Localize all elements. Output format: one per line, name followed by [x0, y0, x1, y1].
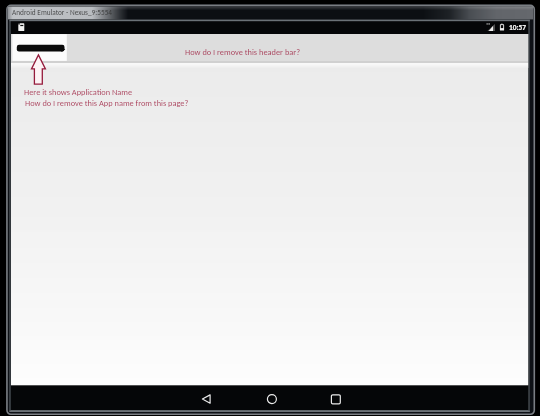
button[interactable]: Application name	[12, 34, 66, 61]
button[interactable]: Back	[200, 392, 214, 406]
staticText: Android Emulator - Nexus_9:5554	[12, 8, 113, 17]
staticText: How do I remove this header bar?	[185, 47, 301, 57]
button[interactable]: App bar	[11, 34, 528, 61]
staticText: How do I remove this App name from this …	[25, 98, 189, 108]
button[interactable]: Home	[265, 392, 279, 406]
button[interactable]: Recent apps	[329, 392, 343, 406]
staticText: 10:57	[509, 23, 527, 32]
staticText: Here it shows Application Name	[24, 87, 133, 97]
